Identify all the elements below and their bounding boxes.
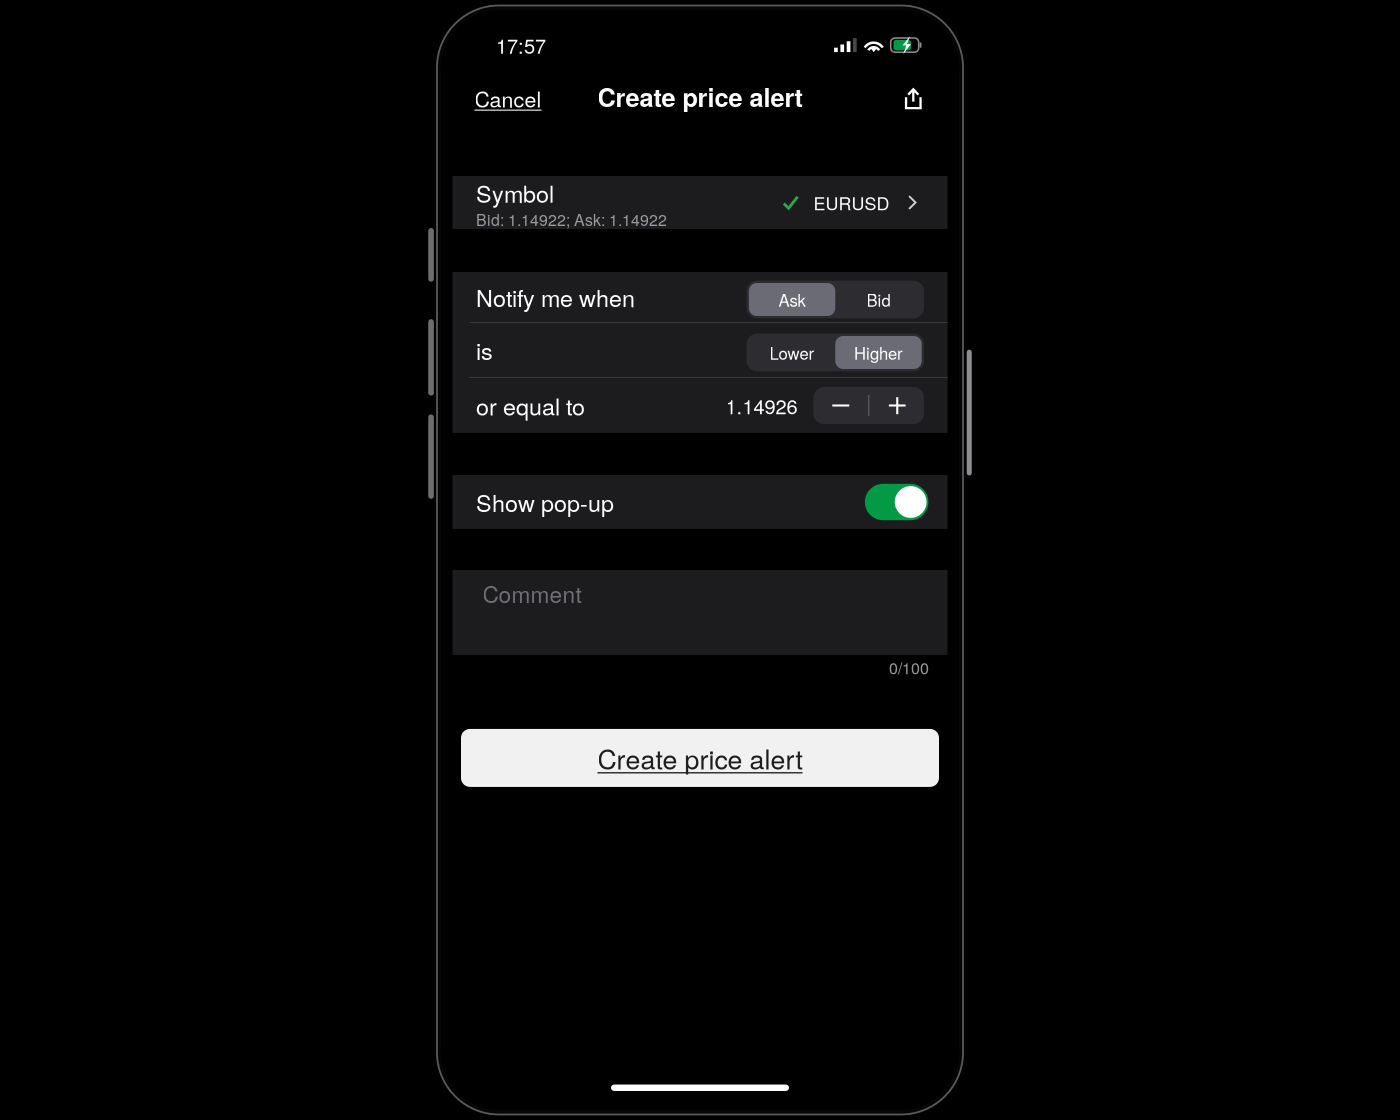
- staticText: Higher: [854, 341, 903, 364]
- staticText: 0/100: [889, 656, 929, 679]
- button[interactable]: Cancel: [474, 74, 541, 118]
- staticText: EURUSD: [814, 190, 890, 215]
- staticText: Symbol: [476, 176, 554, 209]
- staticText: Bid: [866, 288, 890, 311]
- staticText: Comment: [482, 577, 581, 609]
- staticText: 17:57: [496, 31, 546, 59]
- button[interactable]: Higher: [835, 336, 922, 369]
- staticText: Create price alert: [597, 739, 802, 777]
- button[interactable]: Share: [891, 74, 935, 118]
- button[interactable]: Create price alert: [461, 729, 939, 787]
- staticText: or equal to: [476, 389, 585, 422]
- staticText: is: [476, 333, 493, 367]
- button[interactable]: Lower: [749, 336, 835, 369]
- button[interactable]: Show pop-up: [865, 484, 928, 520]
- staticText: Notify me when: [476, 280, 635, 314]
- staticText: Create price alert: [597, 79, 802, 115]
- staticText: Cancel: [474, 83, 541, 113]
- staticText: Show pop-up: [476, 485, 614, 519]
- staticText: 1.14926: [725, 391, 797, 420]
- staticText: Ask: [779, 288, 806, 311]
- button[interactable]: Decrease: [813, 387, 868, 424]
- button[interactable]: Ask: [749, 283, 835, 316]
- button[interactable]: Symbol: [452, 176, 947, 229]
- staticText: Bid: 1.14922; Ask: 1.14922: [476, 208, 667, 230]
- button[interactable]: Increase: [869, 387, 924, 424]
- staticText: Lower: [770, 341, 815, 364]
- button[interactable]: Bid: [835, 283, 922, 316]
